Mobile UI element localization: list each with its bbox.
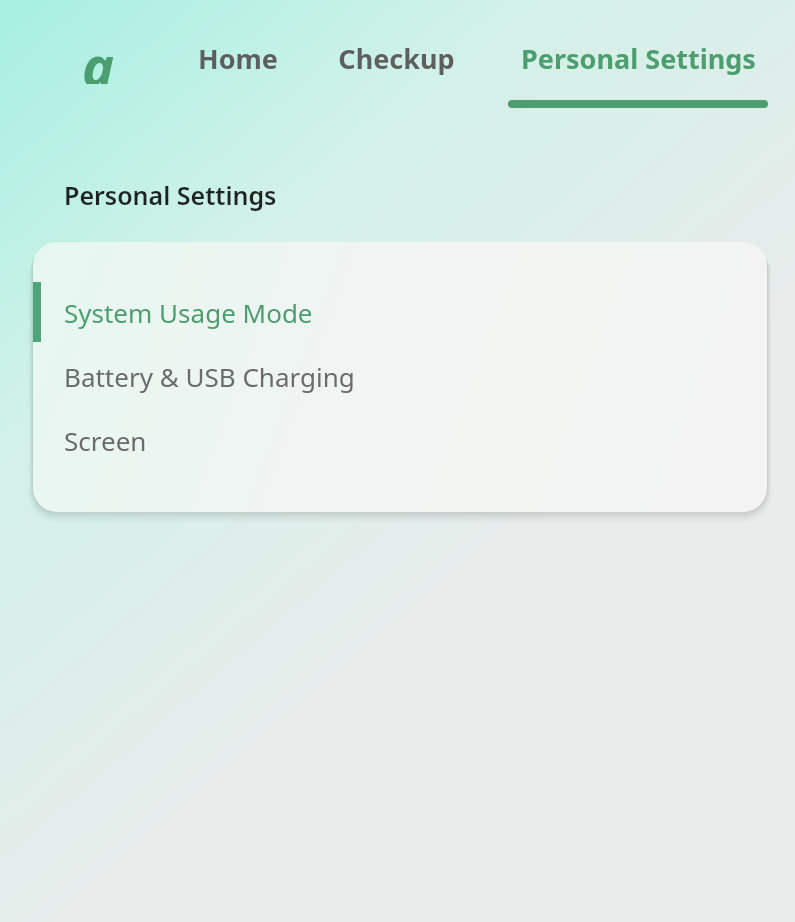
button[interactable]: System Usage Mode bbox=[33, 282, 767, 342]
button[interactable]: Home bbox=[192, 30, 284, 86]
button[interactable]: Personal Settings bbox=[508, 30, 768, 108]
button[interactable]: Checkup bbox=[331, 30, 461, 86]
staticText: Home bbox=[198, 40, 278, 77]
staticText: a bbox=[82, 28, 114, 84]
staticText: Checkup bbox=[338, 40, 455, 77]
staticText: Screen bbox=[64, 423, 147, 458]
button[interactable]: Screen bbox=[33, 410, 767, 470]
button[interactable]: App logo bbox=[70, 28, 126, 84]
button[interactable]: Battery & USB Charging bbox=[33, 346, 767, 406]
staticText: System Usage Mode bbox=[64, 295, 313, 330]
staticText: Personal Settings bbox=[64, 178, 277, 212]
staticText: Personal Settings bbox=[521, 40, 756, 77]
staticText: Battery & USB Charging bbox=[64, 359, 355, 394]
